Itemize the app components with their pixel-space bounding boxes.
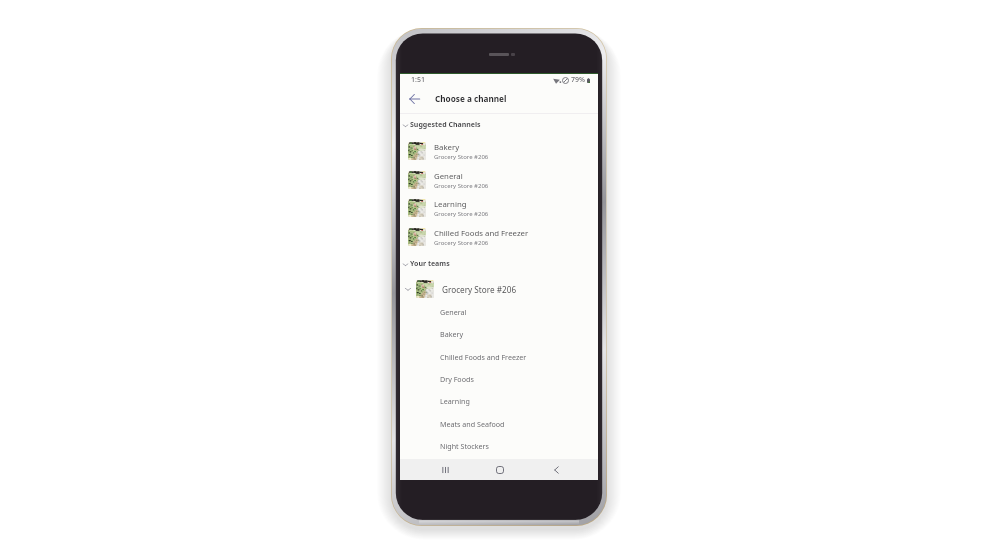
staticText: Chilled Foods and Freezer — [440, 352, 527, 362]
staticText: Learning — [440, 396, 470, 406]
staticText: Bakery — [434, 142, 460, 153]
button[interactable]: Night Stockers — [400, 438, 598, 454]
button[interactable]: Bakery — [400, 326, 598, 342]
staticText: Grocery Store #206 — [434, 239, 489, 247]
staticText: Suggested Channels — [410, 120, 481, 130]
staticText: Grocery Store #206 — [434, 182, 489, 190]
button[interactable]: Learning — [400, 197, 598, 219]
staticText: 1:51 — [411, 75, 425, 85]
staticText: Grocery Store #206 — [434, 210, 489, 218]
staticText: Meats and Seafood — [440, 419, 505, 429]
button[interactable]: Dry Foods — [400, 371, 598, 387]
button[interactable]: Grocery Store #206 — [400, 278, 598, 300]
button[interactable]: Chilled Foods and Freezer — [400, 226, 598, 248]
staticText: Grocery Store #206 — [434, 153, 489, 161]
staticText: Your teams — [410, 259, 450, 269]
staticText: Learning — [434, 199, 467, 210]
staticText: Dry Foods — [440, 374, 474, 384]
staticText: Grocery Store #206 — [442, 284, 517, 295]
staticText: Choose a channel — [435, 93, 507, 104]
button[interactable]: Recent apps — [434, 459, 456, 480]
button[interactable]: General — [400, 304, 598, 320]
staticText: General — [434, 171, 463, 182]
staticText: Bakery — [440, 329, 464, 339]
button[interactable]: Learning — [400, 393, 598, 409]
button[interactable]: Home — [489, 459, 511, 480]
button[interactable]: Your teams — [400, 257, 598, 271]
staticText: Night Stockers — [440, 441, 489, 451]
button[interactable]: Back — [545, 459, 567, 480]
button[interactable]: Suggested Channels — [400, 118, 598, 132]
button[interactable]: General — [400, 169, 598, 191]
button[interactable]: Bakery — [400, 140, 598, 162]
button[interactable]: Back — [405, 89, 424, 108]
staticText: Chilled Foods and Freezer — [434, 228, 529, 239]
button[interactable]: Meats and Seafood — [400, 416, 598, 432]
button[interactable]: Chilled Foods and Freezer — [400, 349, 598, 365]
staticText: 79% — [571, 75, 585, 85]
staticText: General — [440, 307, 467, 317]
